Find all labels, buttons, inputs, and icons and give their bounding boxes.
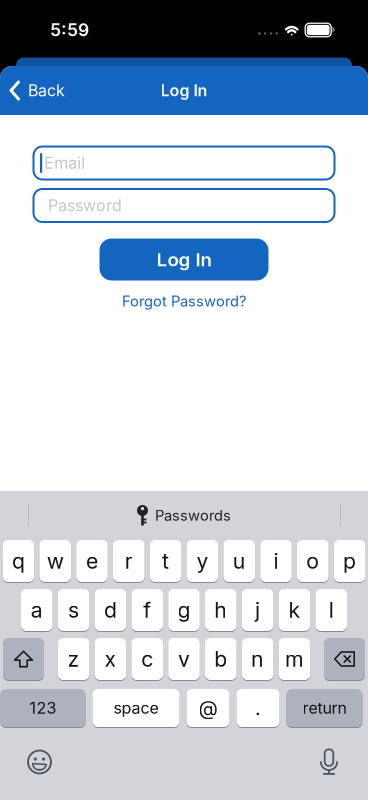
staticText: Password xyxy=(48,196,122,215)
staticText: Passwords xyxy=(155,507,231,524)
staticText: m xyxy=(285,646,304,672)
button[interactable]: n xyxy=(242,638,273,680)
staticText: Email xyxy=(44,154,85,172)
staticText: j xyxy=(255,597,260,623)
staticText: d xyxy=(104,597,117,623)
button[interactable]: b xyxy=(205,638,237,680)
staticText: h xyxy=(214,597,227,623)
staticText: Log In xyxy=(160,81,207,100)
staticText: @ xyxy=(198,696,217,720)
button[interactable]: v xyxy=(168,638,200,680)
button[interactable]: Back xyxy=(0,68,65,112)
button[interactable]: return xyxy=(286,689,362,727)
button[interactable]: h xyxy=(205,589,237,631)
staticText: g xyxy=(177,597,190,623)
staticText: space xyxy=(113,699,158,717)
staticText: Log In xyxy=(156,248,211,270)
button[interactable]: c xyxy=(131,638,163,680)
staticText: y xyxy=(196,548,208,574)
button[interactable]: o xyxy=(297,540,329,582)
staticText: f xyxy=(143,597,151,623)
button[interactable]: d xyxy=(95,589,126,631)
staticText: z xyxy=(68,646,80,672)
button[interactable]: m xyxy=(279,638,310,680)
staticText: p xyxy=(343,548,356,574)
staticText: 123 xyxy=(29,699,56,717)
button[interactable]: 123 xyxy=(0,689,85,727)
staticText: 5:59 xyxy=(50,20,89,40)
button[interactable]: @ xyxy=(186,689,229,727)
button[interactable]: g xyxy=(168,589,200,631)
button[interactable]: x xyxy=(95,638,126,680)
staticText: c xyxy=(141,646,153,672)
button[interactable]: r xyxy=(113,540,145,582)
staticText: e xyxy=(86,548,98,574)
staticText: t xyxy=(162,548,169,574)
button[interactable]: t xyxy=(150,540,181,582)
button[interactable]: q xyxy=(3,540,34,582)
staticText: w xyxy=(47,548,64,574)
button[interactable]: . xyxy=(236,689,279,727)
staticText: Back xyxy=(28,81,65,100)
button[interactable]: f xyxy=(131,589,163,631)
button[interactable]: y xyxy=(187,540,218,582)
staticText: r xyxy=(125,548,133,574)
staticText: a xyxy=(31,597,43,623)
button[interactable]: Email xyxy=(33,146,334,179)
button[interactable]: Passwords xyxy=(64,491,304,540)
staticText: v xyxy=(178,646,190,672)
button[interactable]: a xyxy=(21,589,53,631)
staticText: o xyxy=(306,548,319,574)
staticText: Forgot Password? xyxy=(122,292,246,310)
button[interactable]: Shift xyxy=(3,638,44,680)
staticText: k xyxy=(288,597,300,623)
button[interactable]: w xyxy=(39,540,71,582)
staticText: b xyxy=(214,646,227,672)
staticText: u xyxy=(233,548,246,574)
staticText: l xyxy=(329,597,334,623)
button[interactable]: Dictate xyxy=(320,749,338,775)
button[interactable]: Delete xyxy=(324,638,365,680)
button[interactable]: Emoji xyxy=(27,749,52,774)
button[interactable]: Log In xyxy=(99,238,268,280)
button[interactable]: i xyxy=(260,540,292,582)
staticText: . xyxy=(255,696,261,720)
button[interactable]: j xyxy=(242,589,273,631)
button[interactable]: p xyxy=(334,540,365,582)
button[interactable]: s xyxy=(58,589,89,631)
button[interactable]: l xyxy=(315,589,347,631)
button[interactable]: u xyxy=(223,540,255,582)
staticText: s xyxy=(68,597,79,623)
button[interactable]: space xyxy=(92,689,179,727)
button[interactable]: Password xyxy=(33,189,334,222)
staticText: n xyxy=(251,646,264,672)
button[interactable]: e xyxy=(76,540,108,582)
button[interactable]: Forgot Password? xyxy=(122,280,246,310)
staticText: return xyxy=(302,699,346,717)
staticText: x xyxy=(104,646,116,672)
staticText: i xyxy=(273,548,278,574)
button[interactable]: k xyxy=(279,589,310,631)
button[interactable]: z xyxy=(58,638,89,680)
staticText: q xyxy=(12,548,25,574)
